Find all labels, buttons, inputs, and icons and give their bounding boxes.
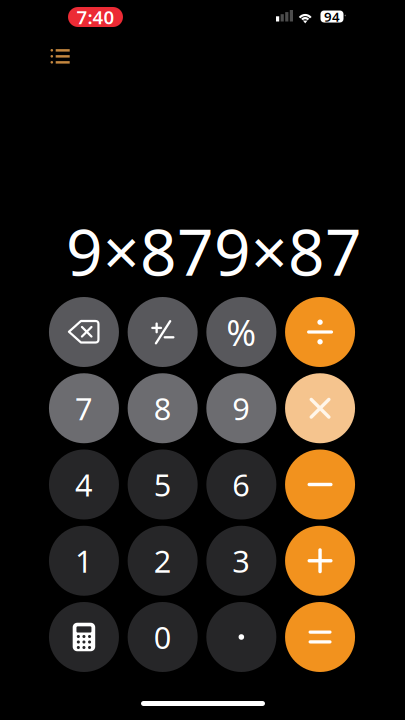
staticText: 5 bbox=[154, 464, 172, 505]
staticText: % bbox=[226, 308, 256, 356]
staticText: 7 bbox=[75, 388, 93, 429]
staticText: 4 bbox=[75, 464, 93, 505]
button[interactable]: Minus bbox=[285, 449, 355, 519]
button[interactable]: 5 bbox=[128, 449, 198, 519]
staticText: 0 bbox=[154, 617, 172, 657]
button[interactable]: Equals bbox=[285, 602, 355, 672]
button[interactable]: 7 bbox=[49, 373, 119, 443]
button[interactable]: Calculator modes bbox=[49, 602, 119, 672]
staticText: 9×879×87 bbox=[66, 208, 362, 293]
staticText: 2 bbox=[154, 540, 172, 581]
button[interactable]: 0 bbox=[128, 602, 198, 672]
button[interactable]: Delete bbox=[49, 297, 119, 367]
button[interactable]: History bbox=[39, 38, 81, 75]
button[interactable]: % bbox=[206, 297, 276, 367]
staticText: 94 bbox=[324, 8, 340, 25]
staticText: 1 bbox=[75, 540, 93, 581]
button[interactable]: Plus bbox=[285, 526, 355, 596]
button[interactable]: 8 bbox=[128, 373, 198, 443]
button[interactable]: 2 bbox=[128, 526, 198, 596]
staticText: 3 bbox=[232, 540, 250, 581]
button[interactable]: Divide bbox=[285, 297, 355, 367]
staticText: 9 bbox=[232, 388, 250, 429]
staticText: 6 bbox=[232, 464, 250, 505]
button[interactable]: 6 bbox=[206, 449, 276, 519]
staticText: 7:40 bbox=[76, 5, 114, 29]
button[interactable]: Decimal point bbox=[206, 602, 276, 672]
button[interactable]: 4 bbox=[49, 449, 119, 519]
button[interactable]: 3 bbox=[206, 526, 276, 596]
button[interactable]: 9 bbox=[206, 373, 276, 443]
staticText: 8 bbox=[154, 388, 172, 429]
button[interactable]: Plus minus bbox=[128, 297, 198, 367]
button[interactable]: 1 bbox=[49, 526, 119, 596]
button[interactable]: Multiply bbox=[285, 373, 355, 443]
